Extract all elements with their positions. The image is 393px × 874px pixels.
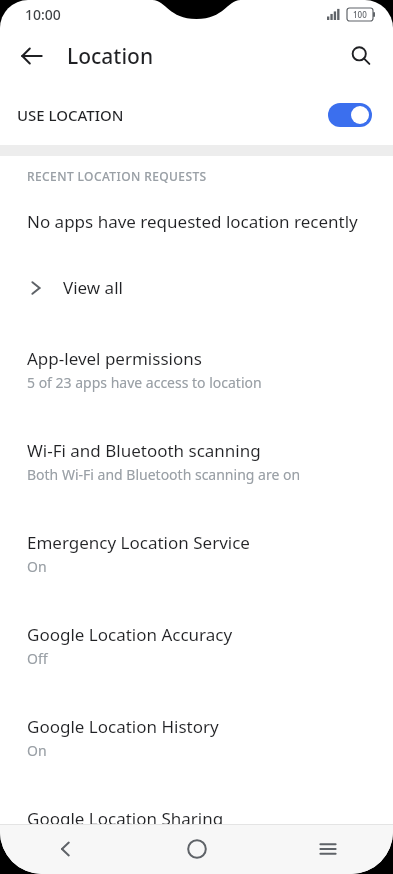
staticText: View all xyxy=(63,276,123,299)
button[interactable]: Recent apps xyxy=(262,824,393,874)
staticText: RECENT LOCATION REQUESTS xyxy=(27,168,207,184)
button[interactable]: Google Location History xyxy=(0,705,393,770)
button[interactable]: App-level permissions xyxy=(0,337,393,402)
button[interactable]: Google Location Accuracy xyxy=(0,613,393,678)
button[interactable]: Wi-Fi and Bluetooth scanning xyxy=(0,429,393,494)
button[interactable]: View all xyxy=(0,270,393,305)
staticText: No apps have requested location recently xyxy=(27,210,358,233)
button[interactable]: USE LOCATION xyxy=(0,84,393,145)
staticText: 5 of 23 apps have access to location xyxy=(27,373,262,392)
button[interactable]: Emergency Location Service xyxy=(0,521,393,586)
staticText: Location xyxy=(67,42,154,71)
button[interactable]: Back xyxy=(10,34,54,78)
staticText: USE LOCATION xyxy=(17,105,124,125)
staticText: On xyxy=(27,557,47,576)
staticText: 10:00 xyxy=(25,5,61,24)
button[interactable]: No apps have requested location recently xyxy=(0,210,393,233)
staticText: Off xyxy=(27,649,48,668)
staticText: Google Location Accuracy xyxy=(27,623,233,646)
button[interactable]: Search xyxy=(339,34,383,78)
staticText: Google Location Sharing xyxy=(27,807,224,830)
staticText: 100 xyxy=(353,9,367,20)
staticText: Both Wi-Fi and Bluetooth scanning are on xyxy=(27,465,301,484)
staticText: Google Location History xyxy=(27,715,219,738)
button[interactable]: Back xyxy=(0,824,131,874)
button[interactable]: Google Location Sharing xyxy=(0,797,393,862)
staticText: App-level permissions xyxy=(27,347,202,370)
button[interactable]: Home xyxy=(131,824,262,874)
staticText: On xyxy=(27,741,47,760)
staticText: Wi-Fi and Bluetooth scanning xyxy=(27,439,261,462)
staticText: Emergency Location Service xyxy=(27,531,250,554)
